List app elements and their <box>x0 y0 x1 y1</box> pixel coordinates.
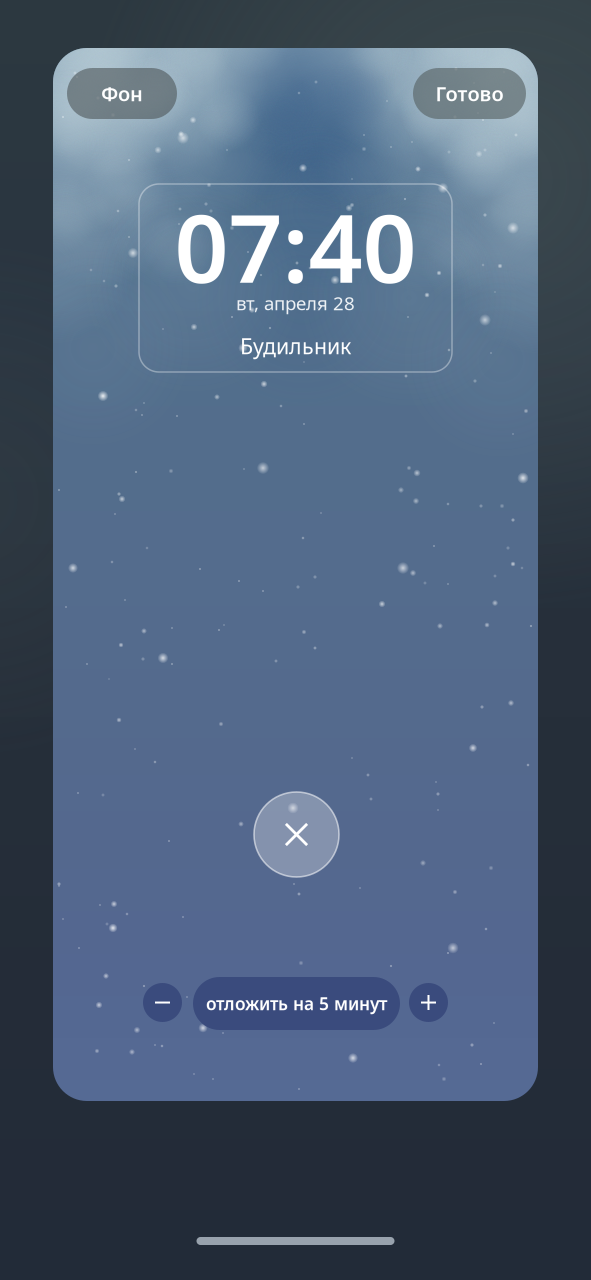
staticText: отложить на 5 минут <box>206 992 387 1015</box>
staticText: Готово <box>435 80 503 107</box>
button[interactable]: Выключить будильник <box>254 792 339 877</box>
staticText: Будильник <box>240 332 351 360</box>
staticText: вт, апреля 28 <box>236 291 355 315</box>
staticText: 07:40 <box>174 183 416 309</box>
button[interactable]: Увеличить время отсрочки <box>409 983 448 1022</box>
button[interactable]: Готово <box>413 68 526 119</box>
button[interactable]: Фон <box>67 68 177 119</box>
staticText: Фон <box>101 80 143 107</box>
button[interactable]: Уменьшить время отсрочки <box>143 983 182 1022</box>
button[interactable]: отложить на 5 минут <box>193 977 400 1030</box>
